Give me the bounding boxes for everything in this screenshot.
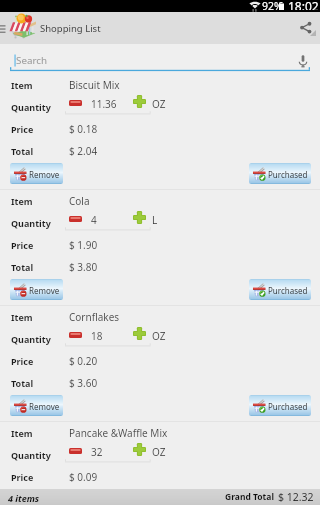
staticText: Remove [29,285,60,296]
staticText: Price [11,471,34,483]
button[interactable]: Decrease quantity [69,448,82,454]
button[interactable]: Remove [10,395,63,416]
staticText: Item [11,427,33,439]
staticText: OZ [152,445,166,459]
button[interactable]: Voice search [293,50,313,72]
staticText: Purchased [268,169,308,180]
staticText: OZ [152,329,166,343]
staticText: Remove [29,401,60,412]
staticText: Shopping List [40,22,101,35]
button[interactable]: Purchased [249,395,311,416]
button[interactable]: Purchased [249,163,311,184]
staticText: Cola [69,194,90,208]
staticText: $ 1.90 [69,238,98,252]
staticText: Item [11,79,33,91]
button[interactable]: Navigation menu [0,12,11,44]
staticText: Total [11,261,34,273]
staticText: $ 0.18 [69,122,98,136]
button[interactable]: Remove [10,279,63,300]
staticText: 11.36 [91,97,117,111]
button[interactable]: Decrease quantity [69,332,82,338]
staticText: OZ [152,97,166,111]
staticText: Cornflakes [69,310,120,324]
staticText: $ 2.04 [69,144,98,158]
staticText: Purchased [268,285,308,296]
staticText: Quantity [11,333,51,345]
staticText: 4 [91,213,97,227]
staticText: Quantity [11,449,51,461]
staticText: Quantity [11,101,51,113]
staticText: Price [11,239,34,251]
staticText: Pancake &Waffle Mix [69,426,168,440]
button[interactable]: Increase quantity [133,211,146,224]
staticText: Purchased [268,401,308,412]
staticText: $ 0.09 [69,470,98,484]
staticText: Remove [29,169,60,180]
button[interactable]: Purchased [249,279,311,300]
staticText: Item [11,195,33,207]
button[interactable]: Remove [10,163,63,184]
staticText: 18 [91,329,103,343]
staticText: Price [11,355,34,367]
button[interactable]: Increase quantity [133,443,146,456]
staticText: Total [11,377,34,389]
staticText: 18:02 [288,0,319,10]
staticText: 4 items [8,492,40,504]
staticText: Total [11,145,34,157]
staticText: $ 12.32 [278,490,314,504]
staticText: Item [11,311,33,323]
button[interactable]: Increase quantity [133,95,146,108]
button[interactable]: Decrease quantity [69,216,82,222]
staticText: Quantity [11,217,51,229]
staticText: Search [16,54,48,67]
staticText: $ 0.20 [69,354,98,368]
staticText: $ 3.80 [69,260,98,274]
staticText: 92% [262,0,283,11]
staticText: L [152,213,158,227]
staticText: Price [11,123,34,135]
staticText: 32 [91,445,103,459]
button[interactable]: Decrease quantity [69,100,82,106]
button[interactable]: Increase quantity [133,327,146,340]
staticText: Grand Total [225,491,274,503]
button[interactable]: Share [294,12,320,44]
staticText: $ 3.60 [69,376,98,390]
staticText: Biscuit Mix [69,78,120,92]
